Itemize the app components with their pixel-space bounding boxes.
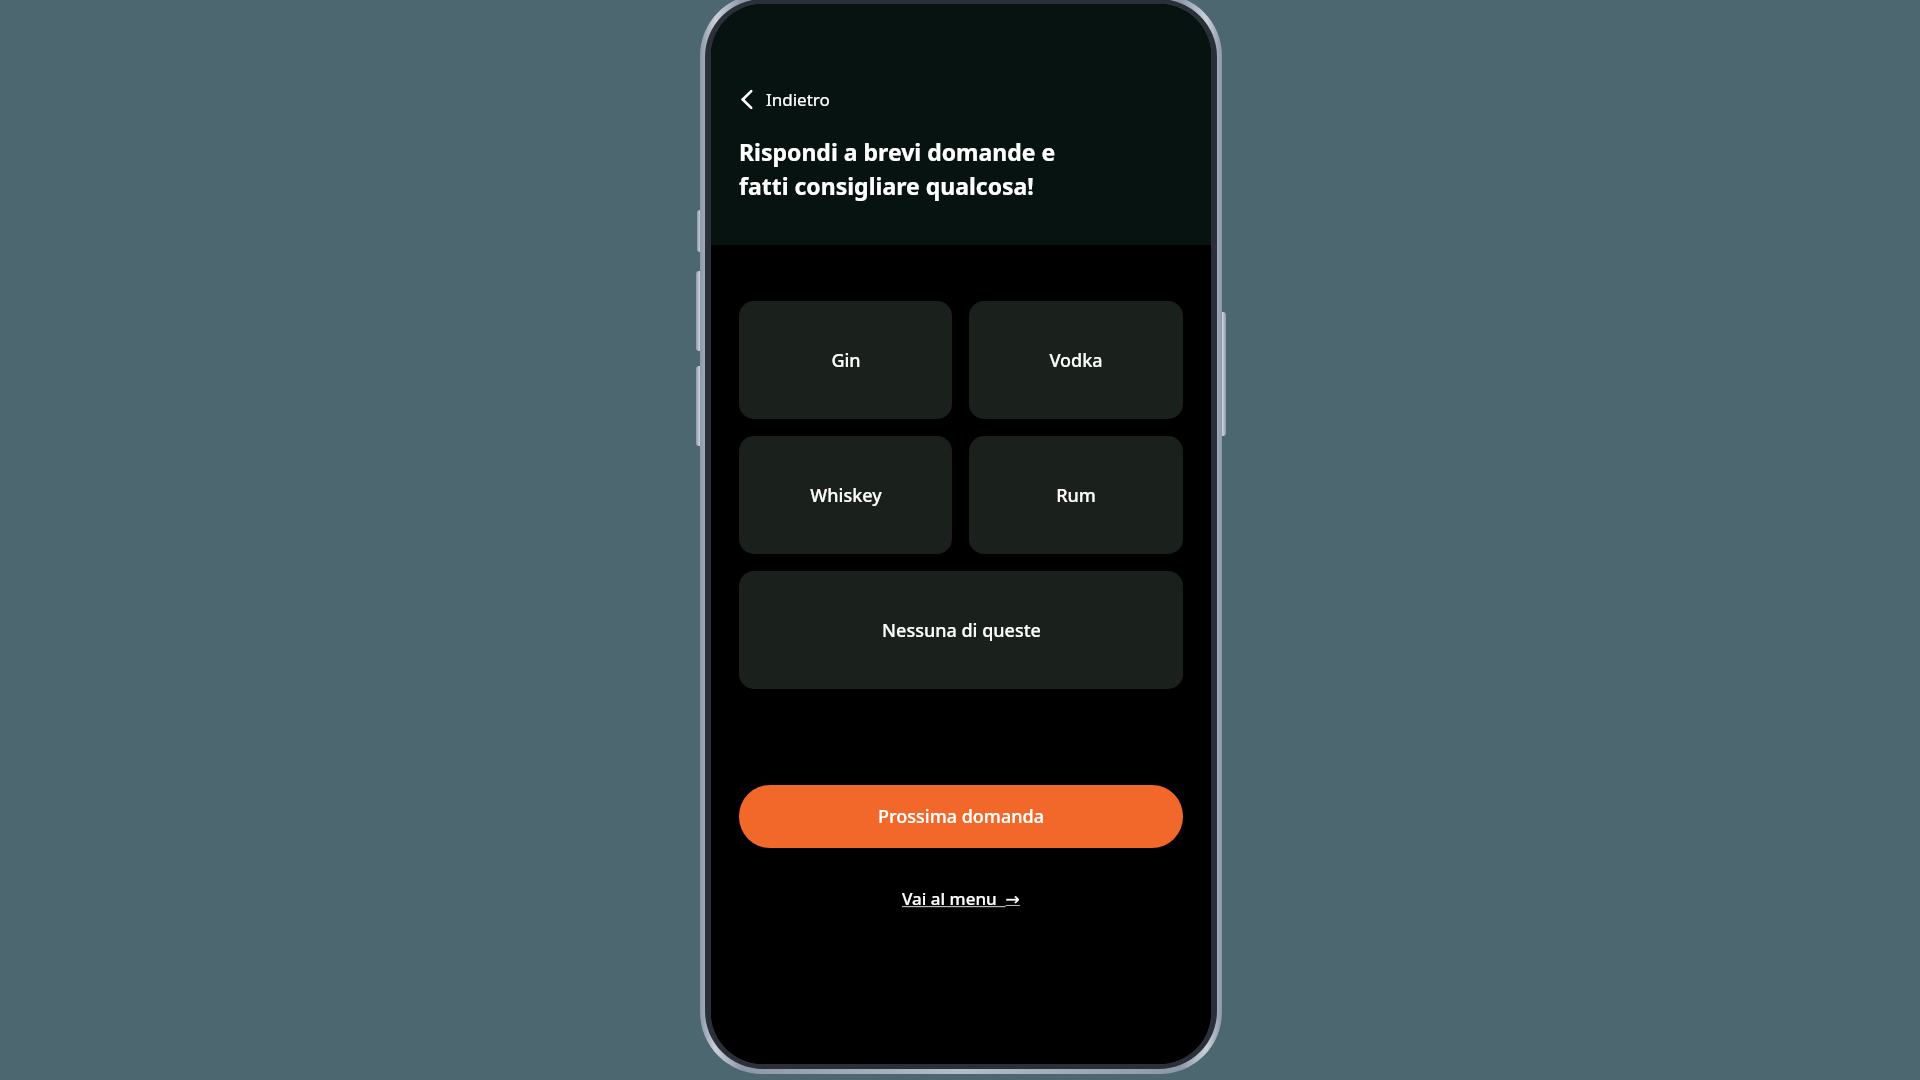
staticText: Nessuna di queste xyxy=(882,618,1041,643)
button[interactable]: Vai al menu → xyxy=(896,883,1026,914)
staticText: Rum xyxy=(1056,483,1096,508)
button[interactable]: Whiskey xyxy=(739,436,952,554)
button[interactable]: Nessuna di queste xyxy=(739,571,1183,689)
staticText: Vai al menu → xyxy=(902,887,1020,910)
staticText: Whiskey xyxy=(810,483,882,508)
staticText: Gin xyxy=(831,348,861,373)
staticText: Prossima domanda xyxy=(878,804,1044,829)
button[interactable]: Indietro xyxy=(739,86,840,113)
button[interactable]: Gin xyxy=(739,301,952,419)
button[interactable]: Prossima domanda xyxy=(739,785,1183,848)
staticText: Indietro xyxy=(766,88,830,111)
button[interactable]: Rum xyxy=(969,436,1183,554)
button[interactable]: Vodka xyxy=(969,301,1183,419)
staticText: Vodka xyxy=(1049,348,1103,373)
staticText: Rispondi a brevi domande e fatti consigl… xyxy=(739,136,1056,202)
